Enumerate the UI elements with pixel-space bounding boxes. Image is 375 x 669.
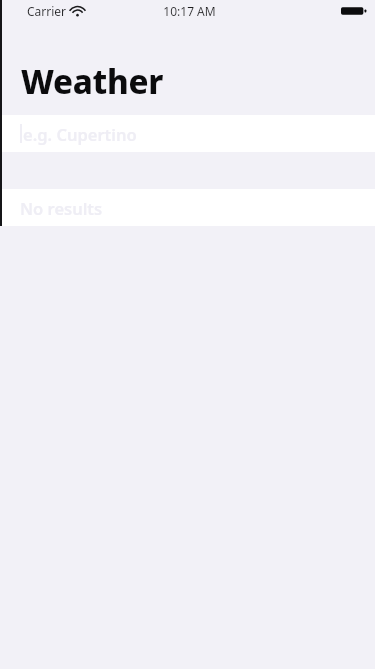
other: Wi-Fi signal (71, 6, 84, 17)
staticText: Carrier (27, 3, 67, 19)
staticText: No results (20, 197, 103, 219)
staticText: 10:17 AM (163, 3, 216, 19)
button[interactable]: e.g. Cupertino (0, 115, 375, 152)
other: Battery full (341, 5, 367, 17)
staticText: Weather (21, 59, 163, 104)
staticText: e.g. Cupertino (23, 123, 137, 145)
button[interactable]: No results (0, 189, 375, 226)
